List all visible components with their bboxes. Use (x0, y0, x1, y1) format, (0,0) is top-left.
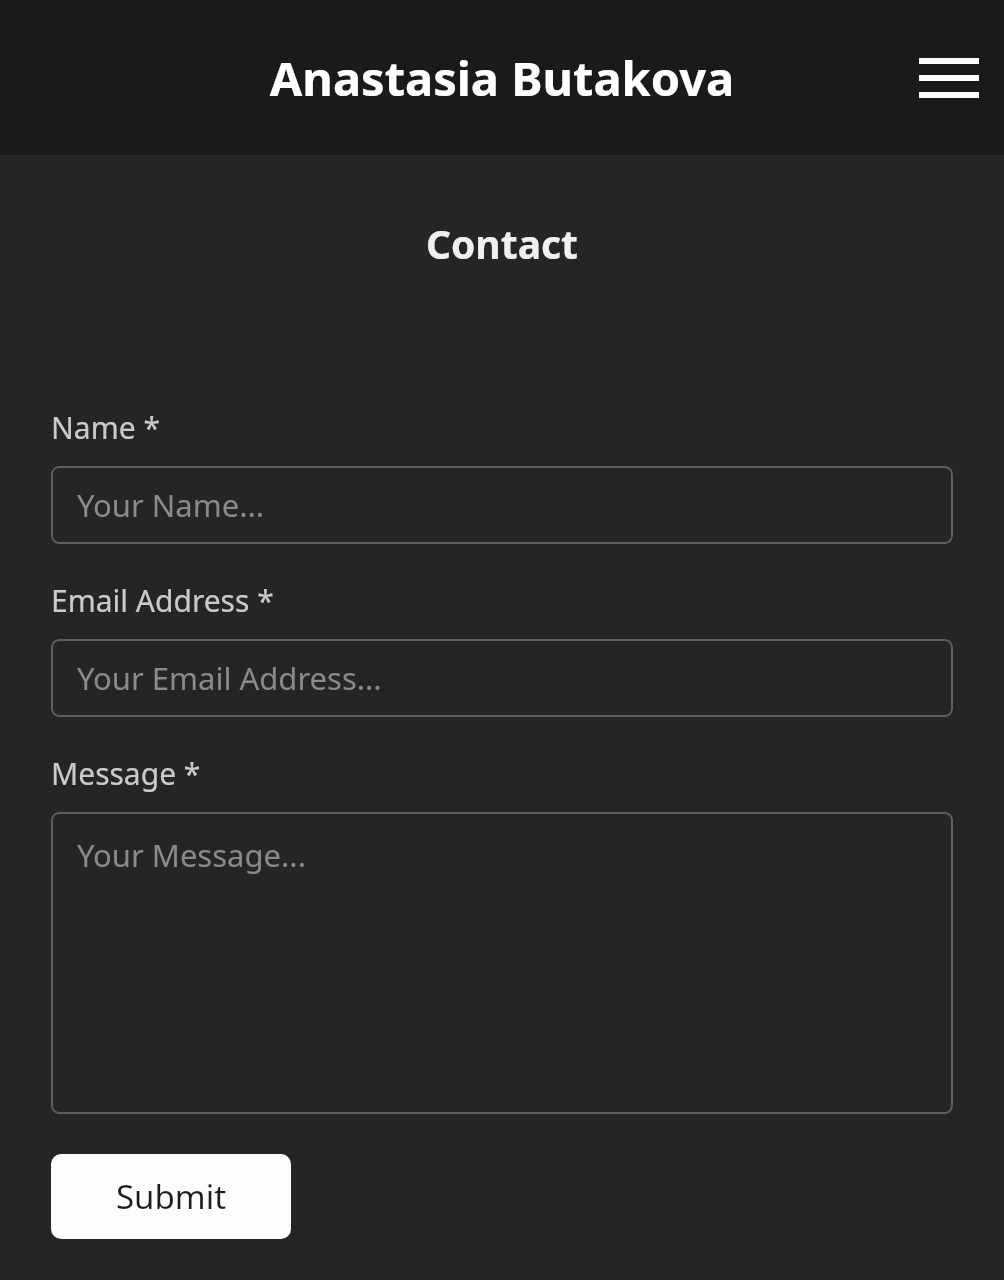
staticText: Your Name... (77, 484, 265, 526)
staticText: Name * (51, 407, 160, 448)
button[interactable]: Your Email Address... (51, 639, 953, 717)
button[interactable]: Your Message... (51, 812, 953, 1114)
staticText: Message * (51, 753, 201, 794)
staticText: Your Message... (77, 834, 306, 876)
staticText: Contact (51, 217, 953, 270)
staticText: Your Email Address... (77, 657, 382, 699)
staticText: Submit (116, 1174, 227, 1219)
button[interactable]: Your Name... (51, 466, 953, 544)
staticText: Email Address * (51, 580, 274, 621)
button[interactable]: Open navigation menu (907, 40, 991, 116)
button[interactable]: Anastasia Butakova (0, 46, 1004, 110)
button[interactable]: Submit (51, 1154, 291, 1239)
